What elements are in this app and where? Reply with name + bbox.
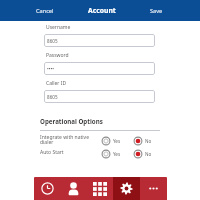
- button[interactable]: No: [133, 149, 152, 159]
- staticText: Caller ID: [46, 80, 67, 87]
- staticText: Account: [88, 6, 116, 15]
- button[interactable]: ••••: [44, 62, 155, 75]
- staticText: Yes: [113, 151, 121, 157]
- staticText: Password: [46, 52, 69, 59]
- staticText: ••••: [47, 66, 54, 72]
- button[interactable]: Settings: [113, 177, 140, 200]
- button[interactable]: No: [133, 136, 152, 146]
- staticText: No: [145, 151, 152, 157]
- staticText: Auto Start: [40, 149, 64, 156]
- button[interactable]: Keypad: [86, 177, 113, 200]
- staticText: Cancel: [36, 7, 54, 15]
- button[interactable]: More: [140, 177, 167, 200]
- staticText: Operational Options: [40, 117, 103, 125]
- button[interactable]: Cancel: [25, 0, 65, 21]
- staticText: Username: [46, 24, 71, 31]
- staticText: 8605: [47, 94, 58, 100]
- staticText: 8605: [47, 38, 58, 44]
- staticText: Integrate with native dialer: [40, 134, 89, 146]
- staticText: Save: [150, 7, 163, 15]
- button[interactable]: Recents: [34, 177, 60, 200]
- button[interactable]: 8605: [44, 34, 155, 47]
- button[interactable]: Yes: [101, 149, 121, 159]
- button[interactable]: Contacts: [60, 177, 86, 200]
- button[interactable]: Save: [136, 0, 176, 21]
- button[interactable]: 8605: [44, 90, 155, 103]
- staticText: No: [145, 138, 152, 144]
- staticText: Yes: [113, 138, 121, 144]
- button[interactable]: Yes: [101, 136, 121, 146]
